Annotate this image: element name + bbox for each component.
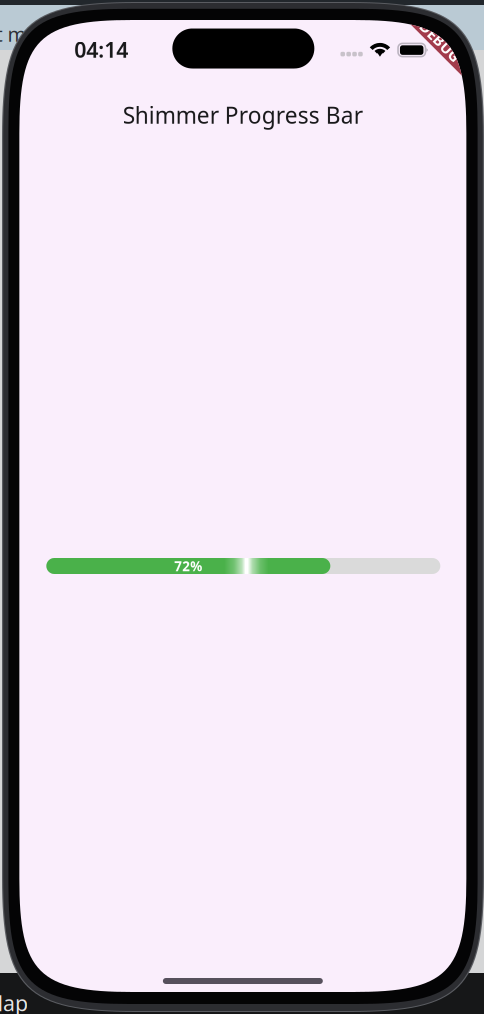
staticText: 72%: [174, 557, 202, 575]
staticText: DEBUG: [415, 32, 466, 51]
staticText: 04:14: [74, 35, 128, 64]
staticText: xt mi: [0, 21, 31, 47]
staticText: Map: [0, 989, 28, 1014]
staticText: Shimmer Progress Bar: [123, 100, 363, 130]
